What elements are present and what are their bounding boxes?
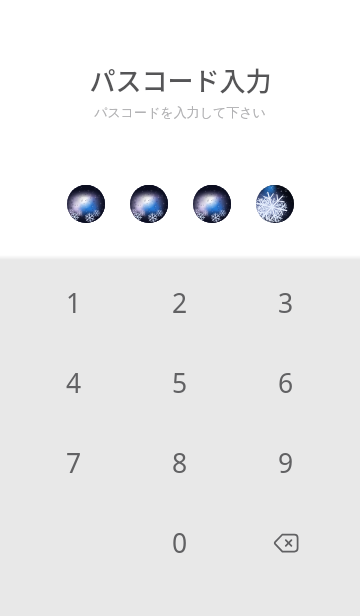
button[interactable]: 6 <box>233 343 339 423</box>
staticText: 5 <box>172 365 188 401</box>
button[interactable]: 1 <box>21 263 127 343</box>
staticText: 7 <box>66 445 82 481</box>
staticText: 9 <box>278 445 294 481</box>
button[interactable]: 4 <box>21 343 127 423</box>
staticText: 0 <box>172 525 188 561</box>
staticText: 6 <box>278 365 294 401</box>
button[interactable]: 3 <box>233 263 339 343</box>
staticText: 3 <box>278 285 294 321</box>
button[interactable]: Backspace <box>233 503 339 583</box>
button[interactable]: 9 <box>233 423 339 503</box>
staticText: パスコード入力 <box>89 61 272 99</box>
staticText: 2 <box>172 285 188 321</box>
button[interactable]: 8 <box>127 423 233 503</box>
button[interactable]: 0 <box>127 503 233 583</box>
staticText: 4 <box>66 365 82 401</box>
button[interactable]: 5 <box>127 343 233 423</box>
staticText: パスコードを入力して下さい <box>94 104 266 120</box>
staticText: 1 <box>66 285 82 321</box>
button[interactable]: 7 <box>21 423 127 503</box>
staticText: 8 <box>172 445 188 481</box>
button[interactable]: 2 <box>127 263 233 343</box>
